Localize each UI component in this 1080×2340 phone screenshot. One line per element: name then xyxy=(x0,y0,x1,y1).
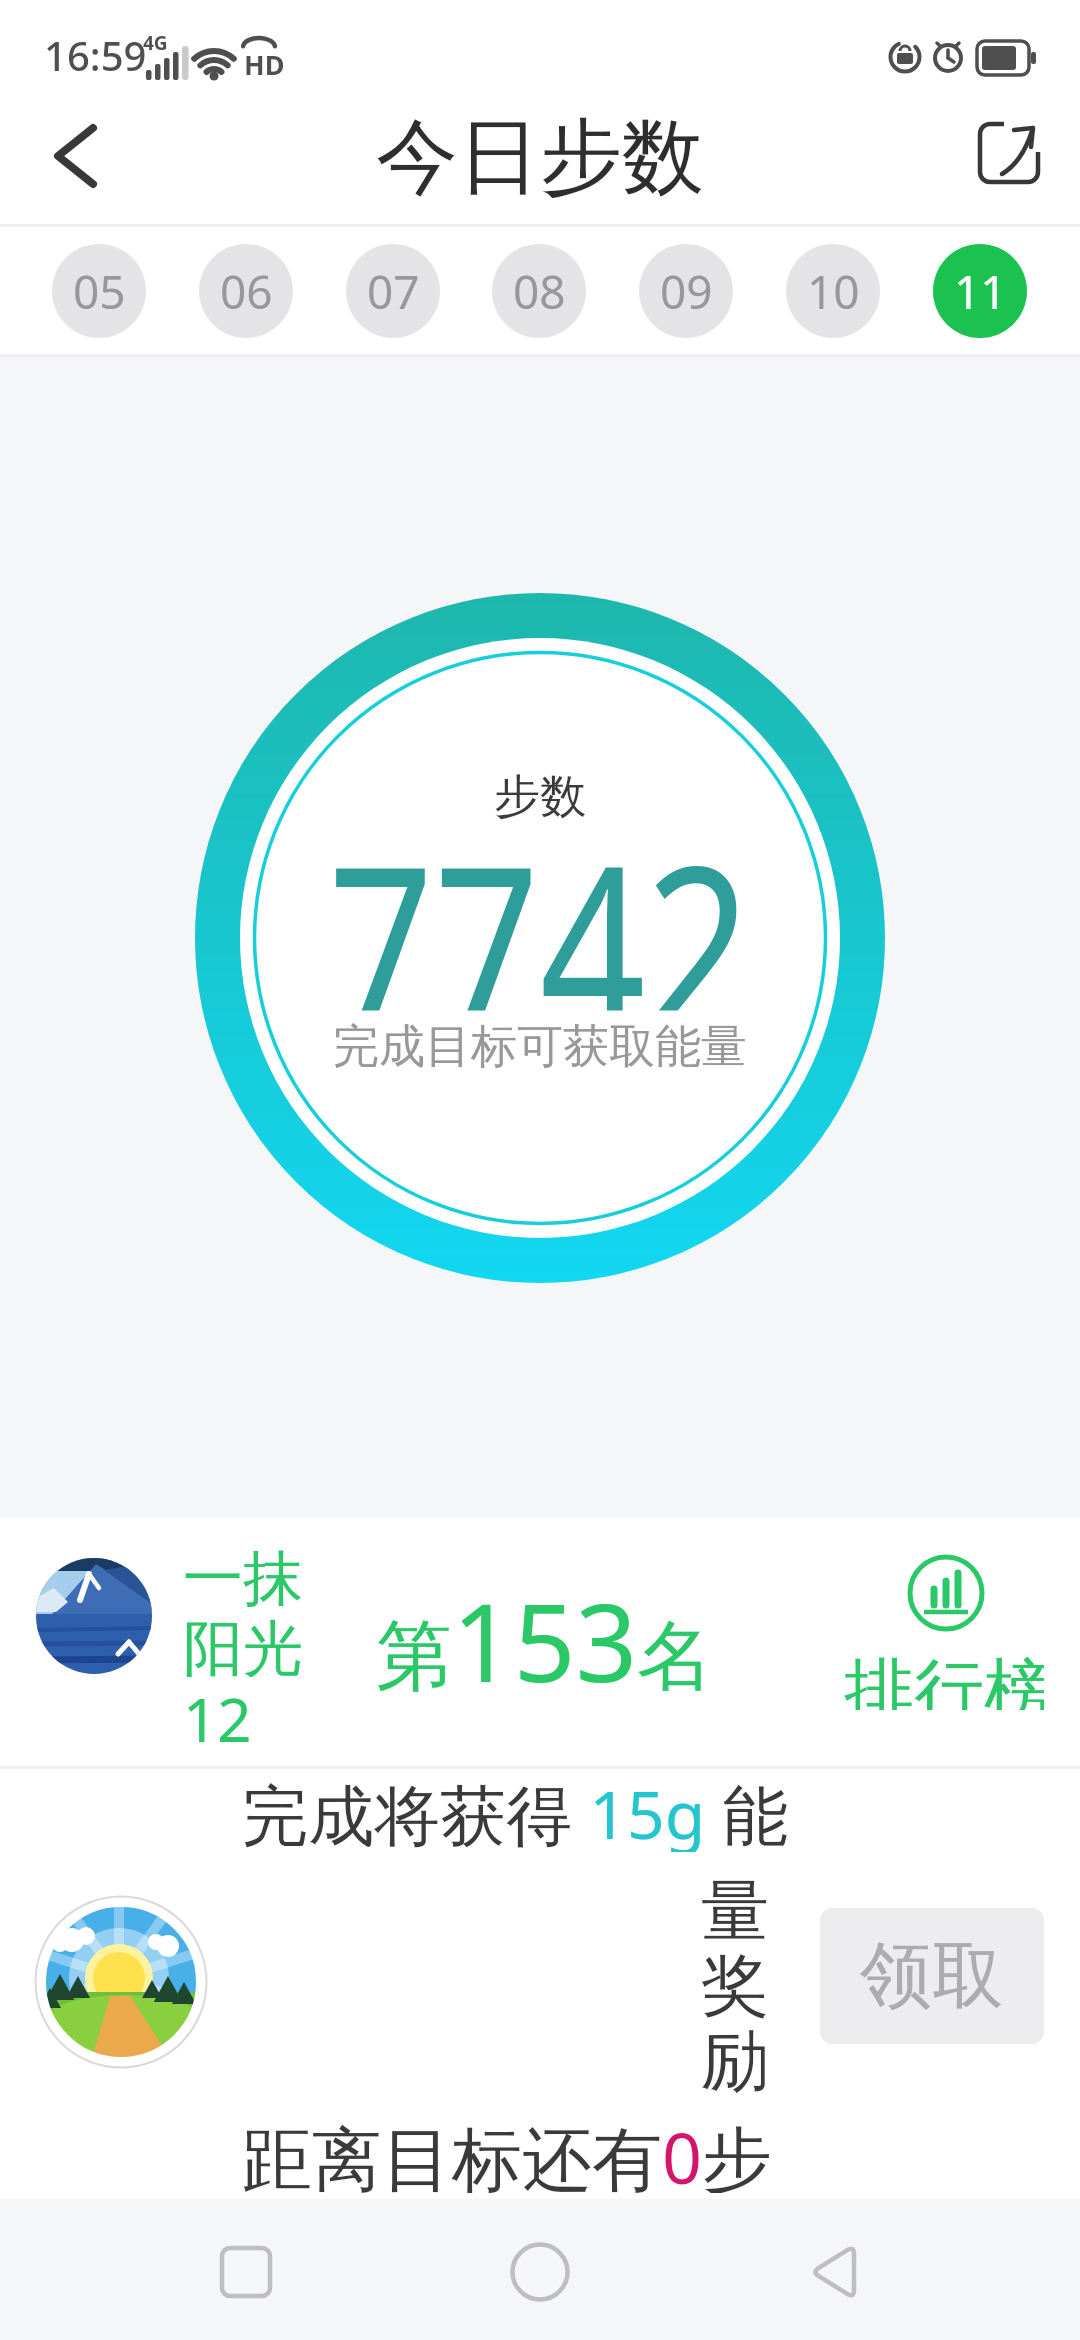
button[interactable] xyxy=(960,105,1060,205)
staticText: 第153名 xyxy=(376,1567,714,1714)
staticText: 领取 xyxy=(860,1931,1004,2022)
button[interactable] xyxy=(30,110,130,210)
staticText: 10 xyxy=(807,260,860,323)
button[interactable] xyxy=(484,2216,596,2328)
staticText: 今日步数 xyxy=(376,106,704,209)
button[interactable]: 07 xyxy=(346,244,440,338)
staticText: 量 奖 励 xyxy=(701,1869,769,2104)
button[interactable]: 领取 xyxy=(820,1908,1044,2044)
button[interactable]: 05 xyxy=(52,244,146,338)
button[interactable] xyxy=(780,2216,892,2328)
button[interactable] xyxy=(0,1520,1080,1766)
staticText: 排行榜 xyxy=(844,1648,1044,1710)
staticText: 一抹阳光12 xyxy=(183,1541,323,1760)
staticText: 完成目标可获取能量 xyxy=(333,1018,747,1076)
button[interactable]: 09 xyxy=(639,244,733,338)
staticText: 7742 xyxy=(328,785,752,1010)
staticText: 06 xyxy=(220,260,273,323)
button[interactable]: 11 xyxy=(933,244,1027,338)
button[interactable]: 08 xyxy=(492,244,586,338)
staticText: 07 xyxy=(367,260,420,323)
staticText: 步数 xyxy=(494,768,586,826)
staticText: 距离目标还有0步 xyxy=(242,2109,773,2193)
staticText: HD xyxy=(244,46,285,82)
staticText: 4G xyxy=(143,30,168,52)
staticText: 08 xyxy=(513,260,566,323)
staticText: 09 xyxy=(660,260,713,323)
staticText: 05 xyxy=(73,260,126,323)
staticText: 完成将获得 15g 能 xyxy=(242,1768,789,1852)
staticText: 11 xyxy=(954,260,1007,323)
staticText: 16:59 xyxy=(44,28,147,82)
button[interactable]: 06 xyxy=(199,244,293,338)
button[interactable] xyxy=(190,2216,302,2328)
button[interactable]: 10 xyxy=(786,244,880,338)
